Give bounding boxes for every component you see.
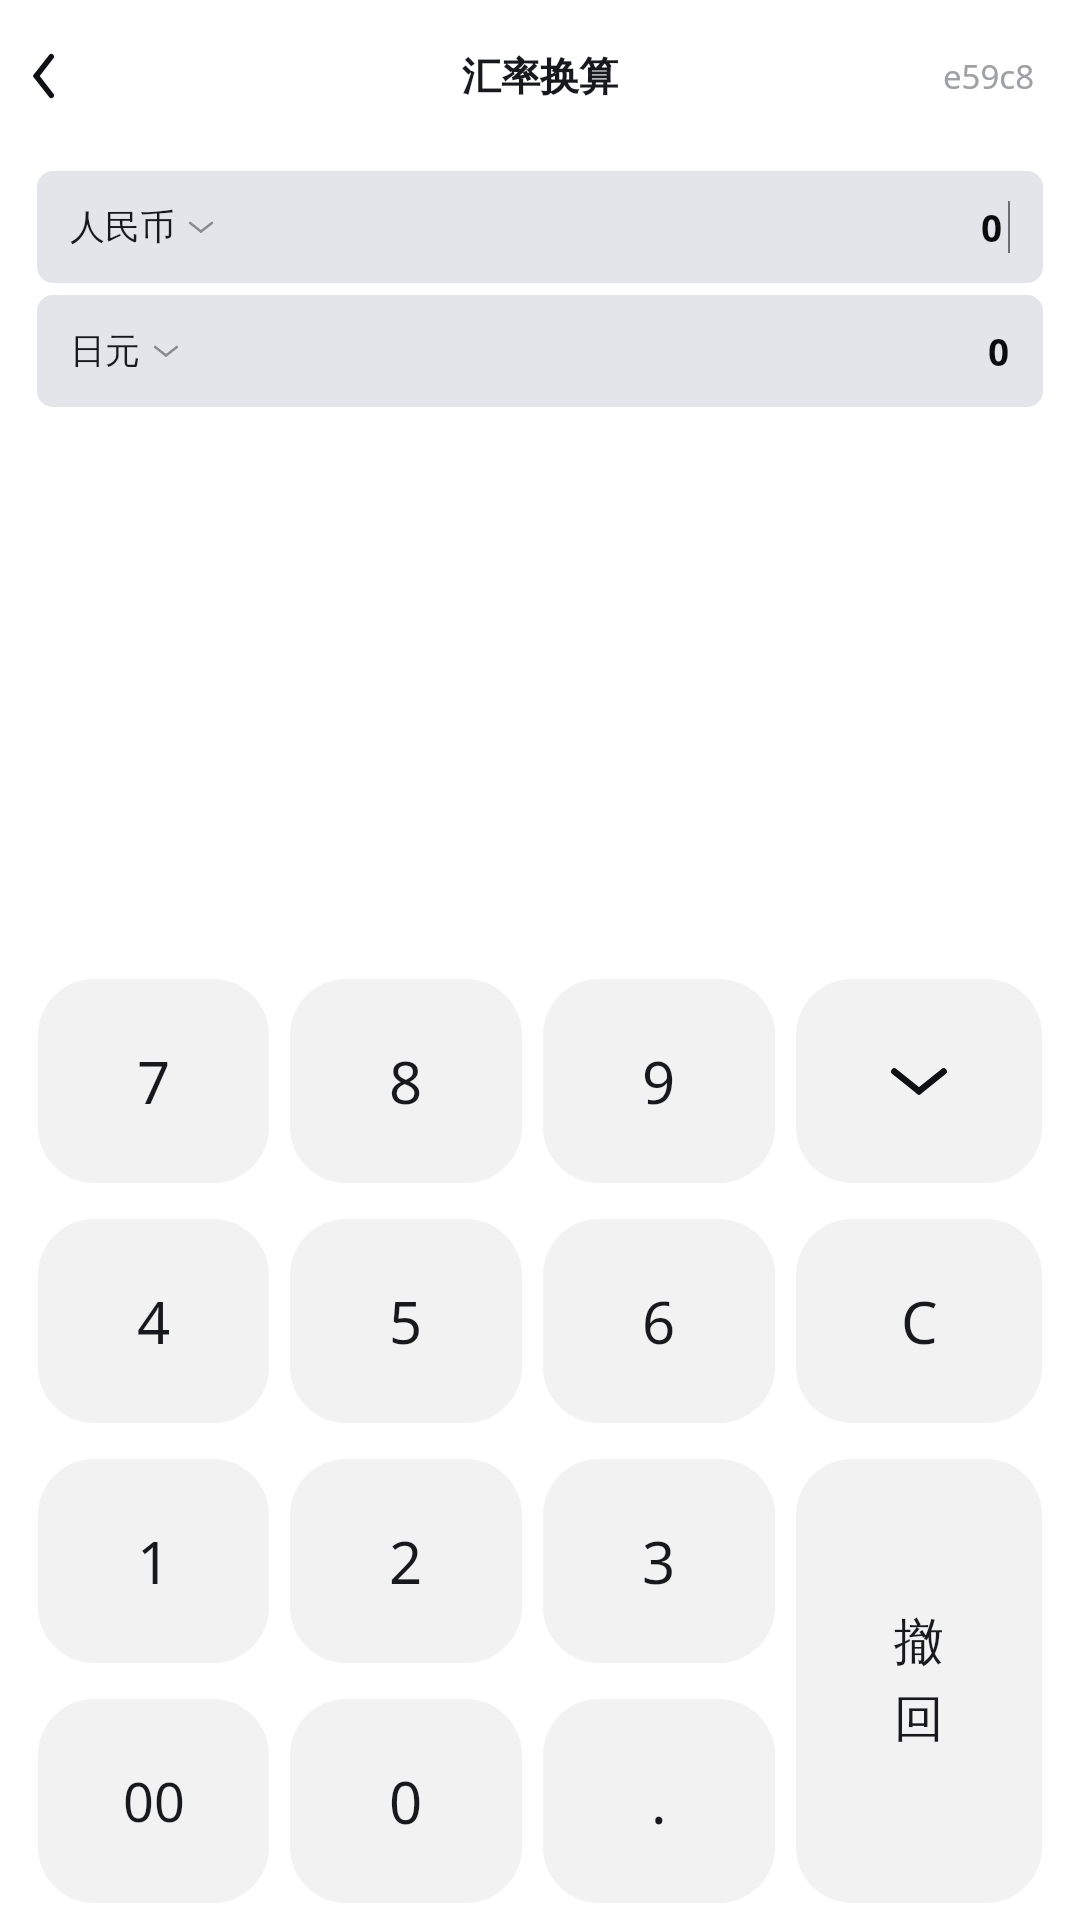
staticText: 日元 (70, 329, 140, 373)
button[interactable]: Hide keyboard (796, 979, 1042, 1183)
button[interactable]: 8 (290, 979, 522, 1183)
staticText: 3 (642, 1522, 676, 1601)
staticText: 1 (137, 1522, 171, 1601)
button[interactable]: 0 (290, 1699, 522, 1903)
button[interactable]: 7 (38, 979, 269, 1183)
staticText: 0 (988, 326, 1010, 376)
staticText: 0 (389, 1762, 423, 1841)
button[interactable]: . (543, 1699, 775, 1903)
button[interactable]: 撤 (796, 1459, 1042, 1903)
staticText: . (651, 1762, 667, 1841)
button[interactable]: 2 (290, 1459, 522, 1663)
staticText: 人民币 (70, 205, 175, 249)
staticText: 6 (642, 1282, 676, 1361)
staticText: 0 (981, 202, 1003, 252)
button[interactable]: Back (8, 40, 80, 112)
button[interactable]: 5 (290, 1219, 522, 1423)
staticText: 5 (389, 1282, 423, 1361)
button[interactable]: 4 (38, 1219, 269, 1423)
button[interactable]: 9 (543, 979, 775, 1183)
staticText: 汇率换算 (462, 52, 618, 101)
staticText: 8 (389, 1042, 423, 1121)
staticText: 4 (137, 1282, 171, 1361)
button[interactable]: 日元 (37, 295, 1043, 407)
button[interactable]: 00 (38, 1699, 269, 1903)
button[interactable]: 1 (38, 1459, 269, 1663)
staticText: 2 (389, 1522, 423, 1601)
staticText: 00 (123, 1764, 185, 1838)
staticText: C (901, 1282, 938, 1361)
button[interactable]: 人民币 (37, 171, 1043, 283)
staticText: 9 (642, 1042, 676, 1121)
button[interactable]: 6 (543, 1219, 775, 1423)
staticText: 撤 (894, 1611, 944, 1674)
staticText: 7 (137, 1042, 171, 1121)
button[interactable]: 3 (543, 1459, 775, 1663)
staticText: 回 (894, 1688, 944, 1751)
button[interactable]: C (796, 1219, 1042, 1423)
staticText: e59c8 (943, 54, 1035, 99)
